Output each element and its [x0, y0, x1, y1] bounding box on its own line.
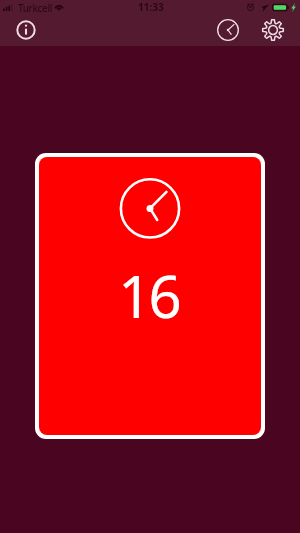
staticText: 16 — [118, 256, 179, 335]
button[interactable]: Timer — [212, 14, 244, 46]
button[interactable]: Settings — [257, 14, 289, 46]
button[interactable]: 16 — [39, 157, 261, 435]
staticText: Turkcell — [18, 1, 53, 15]
staticText: 11:33 — [138, 0, 164, 14]
button[interactable]: Info — [10, 14, 42, 46]
